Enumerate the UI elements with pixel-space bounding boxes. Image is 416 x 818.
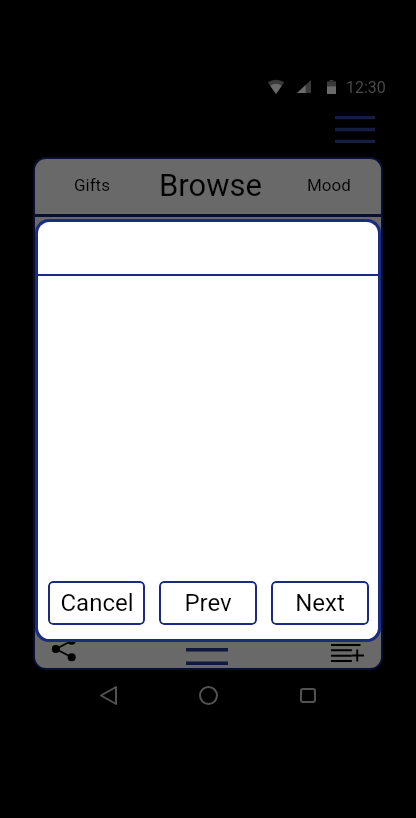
button[interactable]: Gifts: [35, 159, 149, 210]
button[interactable]: Prev: [159, 581, 257, 625]
button[interactable]: Back: [78, 676, 138, 714]
staticText: Mood: [307, 175, 351, 195]
staticText: Cancel: [60, 589, 134, 617]
staticText: Next: [295, 589, 345, 617]
staticText: Browse: [159, 167, 262, 203]
staticText: 12:30: [346, 78, 386, 97]
button[interactable]: Reorder: [186, 648, 228, 665]
button[interactable]: Menu: [335, 116, 375, 143]
staticText: Prev: [184, 589, 232, 617]
button[interactable]: Add to playlist: [331, 644, 364, 662]
button[interactable]: Next: [271, 581, 369, 625]
button[interactable]: Share: [52, 637, 76, 661]
button[interactable]: Recents: [278, 676, 338, 714]
staticText: Gifts: [74, 175, 110, 195]
button[interactable]: Mood: [277, 159, 381, 210]
button[interactable]: Cancel: [48, 581, 145, 625]
button[interactable]: Home: [178, 676, 238, 714]
